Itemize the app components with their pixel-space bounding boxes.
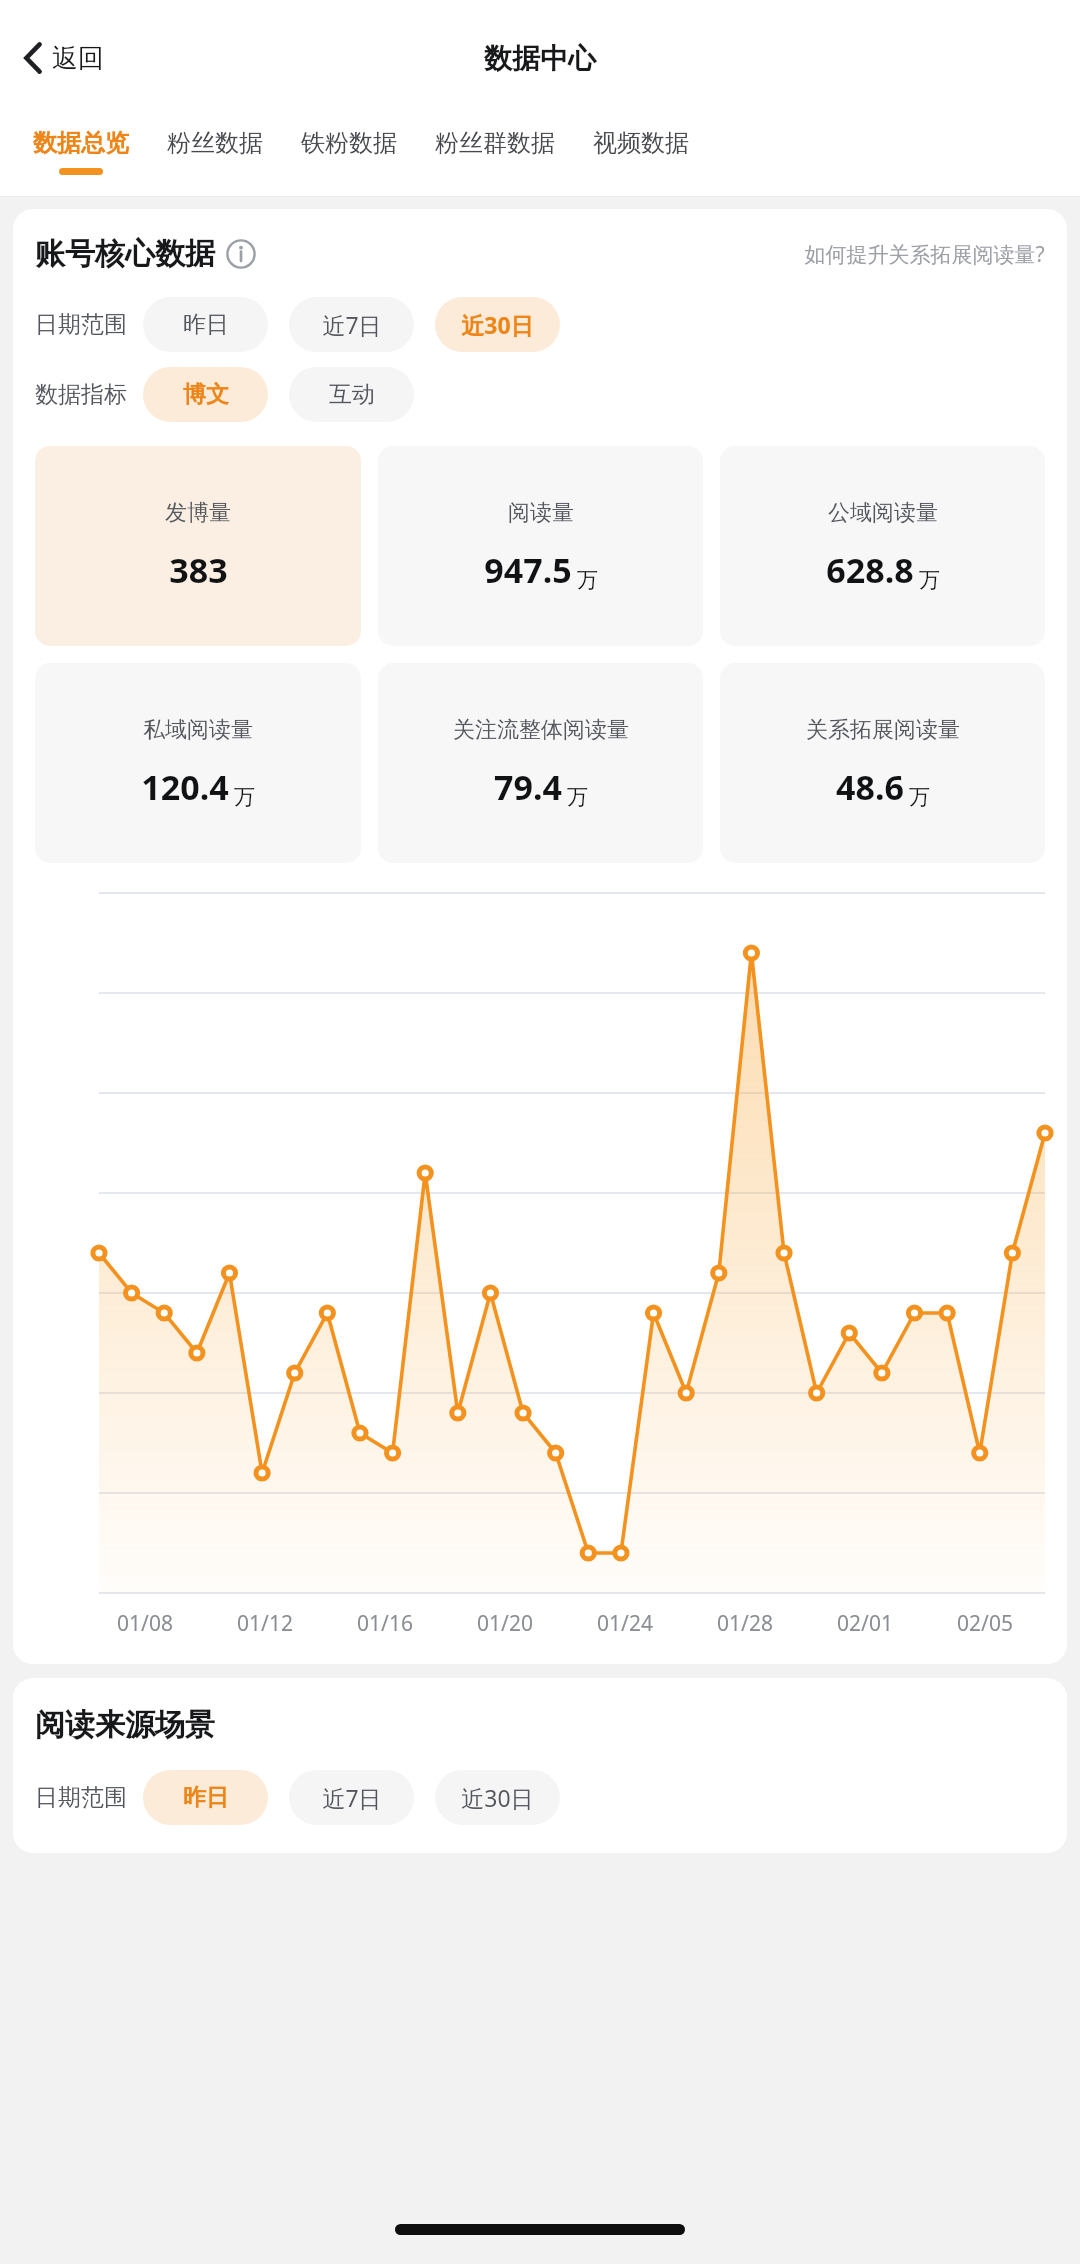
staticText: 昨日: [183, 310, 229, 339]
button[interactable]: 说明: [226, 239, 256, 269]
button[interactable]: 数据总览: [14, 116, 148, 175]
staticText: 近7日: [322, 1782, 382, 1813]
staticText: 02/05: [957, 1609, 1013, 1638]
staticText: 公域阅读量: [828, 499, 938, 527]
staticText: 120.4: [141, 764, 229, 810]
button[interactable]: 如何提升关系拓展阅读量?: [804, 240, 1045, 269]
button[interactable]: 互动: [289, 367, 414, 422]
staticText: 01/28: [717, 1609, 773, 1638]
staticText: 数据中心: [484, 41, 596, 76]
button[interactable]: 近30日: [435, 297, 560, 352]
button[interactable]: 粉丝群数据: [416, 116, 574, 168]
staticText: 私域阅读量: [143, 716, 253, 744]
button[interactable]: 发博量: [35, 446, 361, 646]
staticText: 01/08: [117, 1609, 173, 1638]
staticText: 博文: [183, 380, 229, 409]
staticText: 万: [234, 784, 255, 810]
staticText: 阅读量: [508, 499, 574, 527]
button[interactable]: 视频数据: [574, 116, 708, 168]
staticText: 万: [577, 567, 598, 593]
button[interactable]: 近7日: [289, 1770, 414, 1825]
button[interactable]: 阅读量: [378, 446, 703, 646]
staticText: 日期范围: [35, 1783, 127, 1812]
staticText: 互动: [329, 380, 375, 409]
staticText: 01/20: [477, 1609, 533, 1638]
button[interactable]: 昨日: [143, 1770, 268, 1825]
staticText: 发博量: [165, 499, 231, 527]
staticText: 昨日: [183, 1783, 229, 1812]
staticText: 383: [169, 547, 228, 593]
staticText: 79.4: [494, 764, 562, 810]
staticText: 铁粉数据: [301, 128, 397, 158]
button[interactable]: 近30日: [435, 1770, 560, 1825]
staticText: 万: [567, 784, 588, 810]
staticText: 947.5: [484, 547, 572, 593]
staticText: 01/16: [357, 1609, 413, 1638]
staticText: 日期范围: [35, 310, 127, 339]
staticText: 628.8: [826, 547, 914, 593]
staticText: 阅读来源场景: [35, 1706, 215, 1744]
staticText: 视频数据: [593, 128, 689, 158]
button[interactable]: 铁粉数据: [282, 116, 416, 168]
staticText: 48.6: [836, 764, 904, 810]
button[interactable]: 近7日: [289, 297, 414, 352]
staticText: 近30日: [461, 309, 534, 340]
button[interactable]: 关注流整体阅读量: [378, 663, 703, 863]
staticText: 数据总览: [33, 128, 129, 158]
staticText: 如何提升关系拓展阅读量?: [804, 240, 1045, 269]
staticText: 关注流整体阅读量: [453, 716, 629, 744]
staticText: 万: [919, 567, 940, 593]
button[interactable]: 博文: [143, 367, 268, 422]
button[interactable]: 昨日: [143, 297, 268, 352]
button[interactable]: 返回: [12, 33, 116, 83]
button[interactable]: 粉丝数据: [148, 116, 282, 168]
staticText: 粉丝数据: [167, 128, 263, 158]
staticText: 近30日: [461, 1782, 534, 1813]
button[interactable]: 关系拓展阅读量: [720, 663, 1045, 863]
staticText: 粉丝群数据: [435, 128, 555, 158]
staticText: 万: [909, 784, 930, 810]
staticText: 关系拓展阅读量: [806, 716, 960, 744]
staticText: 01/24: [597, 1609, 653, 1638]
button[interactable]: 公域阅读量: [720, 446, 1045, 646]
staticText: 01/12: [237, 1609, 293, 1638]
staticText: 近7日: [322, 309, 382, 340]
staticText: 02/01: [837, 1609, 893, 1638]
staticText: 返回: [52, 42, 104, 75]
button[interactable]: 私域阅读量: [35, 663, 361, 863]
staticText: 数据指标: [35, 380, 127, 409]
staticText: 账号核心数据: [35, 235, 215, 273]
